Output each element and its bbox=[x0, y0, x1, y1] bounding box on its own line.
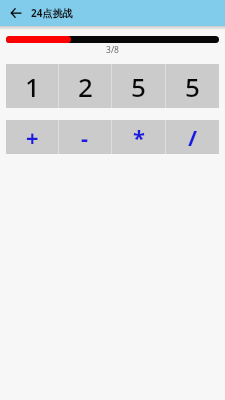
staticText: 5 bbox=[185, 69, 200, 104]
staticText: 24点挑战 bbox=[31, 6, 73, 20]
staticText: + bbox=[26, 122, 39, 152]
staticText: 5 bbox=[131, 69, 146, 104]
staticText: * bbox=[133, 122, 145, 152]
button[interactable]: 1 bbox=[6, 64, 58, 108]
button[interactable]: / bbox=[166, 120, 219, 154]
button[interactable]: 5 bbox=[166, 64, 219, 108]
button[interactable]: * bbox=[112, 120, 165, 154]
staticText: 3/8 bbox=[0, 44, 225, 56]
staticText: 1 bbox=[25, 69, 40, 104]
button[interactable]: - bbox=[59, 120, 111, 154]
staticText: - bbox=[81, 122, 89, 152]
button[interactable]: Back bbox=[0, 0, 31, 26]
staticText: / bbox=[188, 122, 198, 152]
button[interactable]: 5 bbox=[112, 64, 165, 108]
button[interactable]: 2 bbox=[59, 64, 111, 108]
button[interactable]: + bbox=[6, 120, 58, 154]
staticText: 2 bbox=[78, 69, 93, 104]
